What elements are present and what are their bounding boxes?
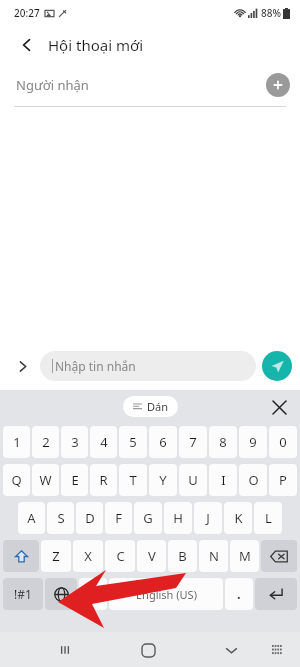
staticText: Z (52, 547, 60, 565)
staticText: L (265, 509, 272, 527)
button[interactable]: S (47, 502, 74, 534)
staticText: . (237, 585, 241, 603)
button[interactable]: P (269, 464, 297, 496)
button[interactable]: !#1 (3, 578, 43, 610)
staticText: 2 (42, 433, 50, 451)
button[interactable]: I (209, 464, 237, 496)
button[interactable]: Y (149, 464, 177, 496)
button[interactable]: V (137, 540, 166, 572)
button[interactable]: T (119, 464, 147, 496)
staticText: E (71, 471, 79, 489)
button[interactable]: 7 (179, 426, 207, 458)
button[interactable]: E (61, 464, 88, 496)
button[interactable]: Switch keyboard (262, 635, 292, 665)
button[interactable]: 3 (61, 426, 88, 458)
button[interactable]: More options (8, 352, 36, 380)
staticText: W (39, 471, 52, 489)
button[interactable]: D (76, 502, 103, 534)
staticText: S (57, 509, 65, 527)
button[interactable]: Backspace (261, 540, 297, 572)
button[interactable]: Dán (123, 396, 178, 417)
button[interactable]: 5 (119, 426, 147, 458)
button[interactable]: Enter (255, 578, 297, 610)
button[interactable]: N (199, 540, 228, 572)
button[interactable]: Q (3, 464, 30, 496)
staticText: Q (11, 471, 22, 489)
button[interactable]: Back (12, 30, 42, 60)
button[interactable]: Send (262, 351, 292, 381)
button[interactable]: A (18, 502, 45, 534)
staticText: I (221, 471, 226, 489)
button[interactable]: Add recipient (266, 73, 290, 97)
staticText: !#1 (14, 586, 32, 602)
button[interactable]: J (194, 502, 222, 534)
button[interactable]: 8 (209, 426, 237, 458)
staticText: H (173, 509, 183, 527)
staticText: G (143, 509, 153, 527)
button[interactable]: U (179, 464, 207, 496)
button[interactable]: Close keyboard toolbar (268, 396, 290, 418)
staticText: X (84, 547, 92, 565)
button[interactable]: Recent apps (48, 633, 82, 667)
button[interactable]: 6 (149, 426, 177, 458)
staticText: V (148, 547, 156, 565)
staticText: C (116, 547, 125, 565)
staticText: Nhập tin nhắn (55, 358, 136, 374)
button[interactable]: Change language (45, 578, 77, 610)
button[interactable]: C (105, 540, 135, 572)
button[interactable]: G (134, 502, 162, 534)
button[interactable]: 0 (269, 426, 297, 458)
staticText: 4 (100, 433, 108, 451)
staticText: D (85, 509, 95, 527)
button[interactable]: Z (41, 540, 71, 572)
button[interactable]: 1 (3, 426, 30, 458)
button[interactable]: O (239, 464, 267, 496)
staticText: 88% (261, 6, 281, 20)
button[interactable]: English (US) (109, 578, 223, 610)
button[interactable]: Emoji (79, 578, 107, 610)
staticText: P (279, 471, 287, 489)
staticText: Hội thoại mới (48, 35, 144, 55)
staticText: B (178, 547, 187, 565)
staticText: 20:27 (14, 6, 40, 20)
staticText: 8 (219, 433, 227, 451)
button[interactable]: R (90, 464, 117, 496)
staticText: 0 (279, 433, 287, 451)
button[interactable]: Hide keyboard (214, 633, 248, 667)
button[interactable]: H (164, 502, 192, 534)
staticText: T (129, 471, 137, 489)
staticText: R (99, 471, 108, 489)
button[interactable]: F (105, 502, 132, 534)
button[interactable]: L (254, 502, 282, 534)
button[interactable]: 4 (90, 426, 117, 458)
staticText: 7 (189, 433, 197, 451)
button[interactable]: X (73, 540, 103, 572)
staticText: F (115, 509, 122, 527)
staticText: J (206, 509, 210, 527)
staticText: English (US) (136, 587, 197, 602)
staticText: Dán (147, 399, 168, 414)
button[interactable]: Shift (3, 540, 39, 572)
staticText: 5 (129, 433, 137, 451)
staticText: 1 (13, 433, 21, 451)
button[interactable]: Nhập tin nhắn (40, 351, 256, 381)
button[interactable]: K (224, 502, 252, 534)
button[interactable]: M (230, 540, 259, 572)
staticText: 9 (249, 433, 257, 451)
button[interactable]: Home (131, 633, 165, 667)
staticText: Người nhận (16, 76, 266, 94)
button[interactable]: B (168, 540, 197, 572)
staticText: O (248, 471, 259, 489)
staticText: M (239, 547, 251, 565)
staticText: N (209, 547, 219, 565)
button[interactable]: . (225, 578, 253, 610)
button[interactable]: 2 (32, 426, 59, 458)
staticText: U (188, 471, 198, 489)
staticText: 3 (71, 433, 79, 451)
button[interactable]: 9 (239, 426, 267, 458)
staticText: Y (159, 471, 167, 489)
button[interactable]: W (32, 464, 59, 496)
staticText: A (27, 509, 36, 527)
staticText: 6 (159, 433, 167, 451)
staticText: K (234, 509, 243, 527)
